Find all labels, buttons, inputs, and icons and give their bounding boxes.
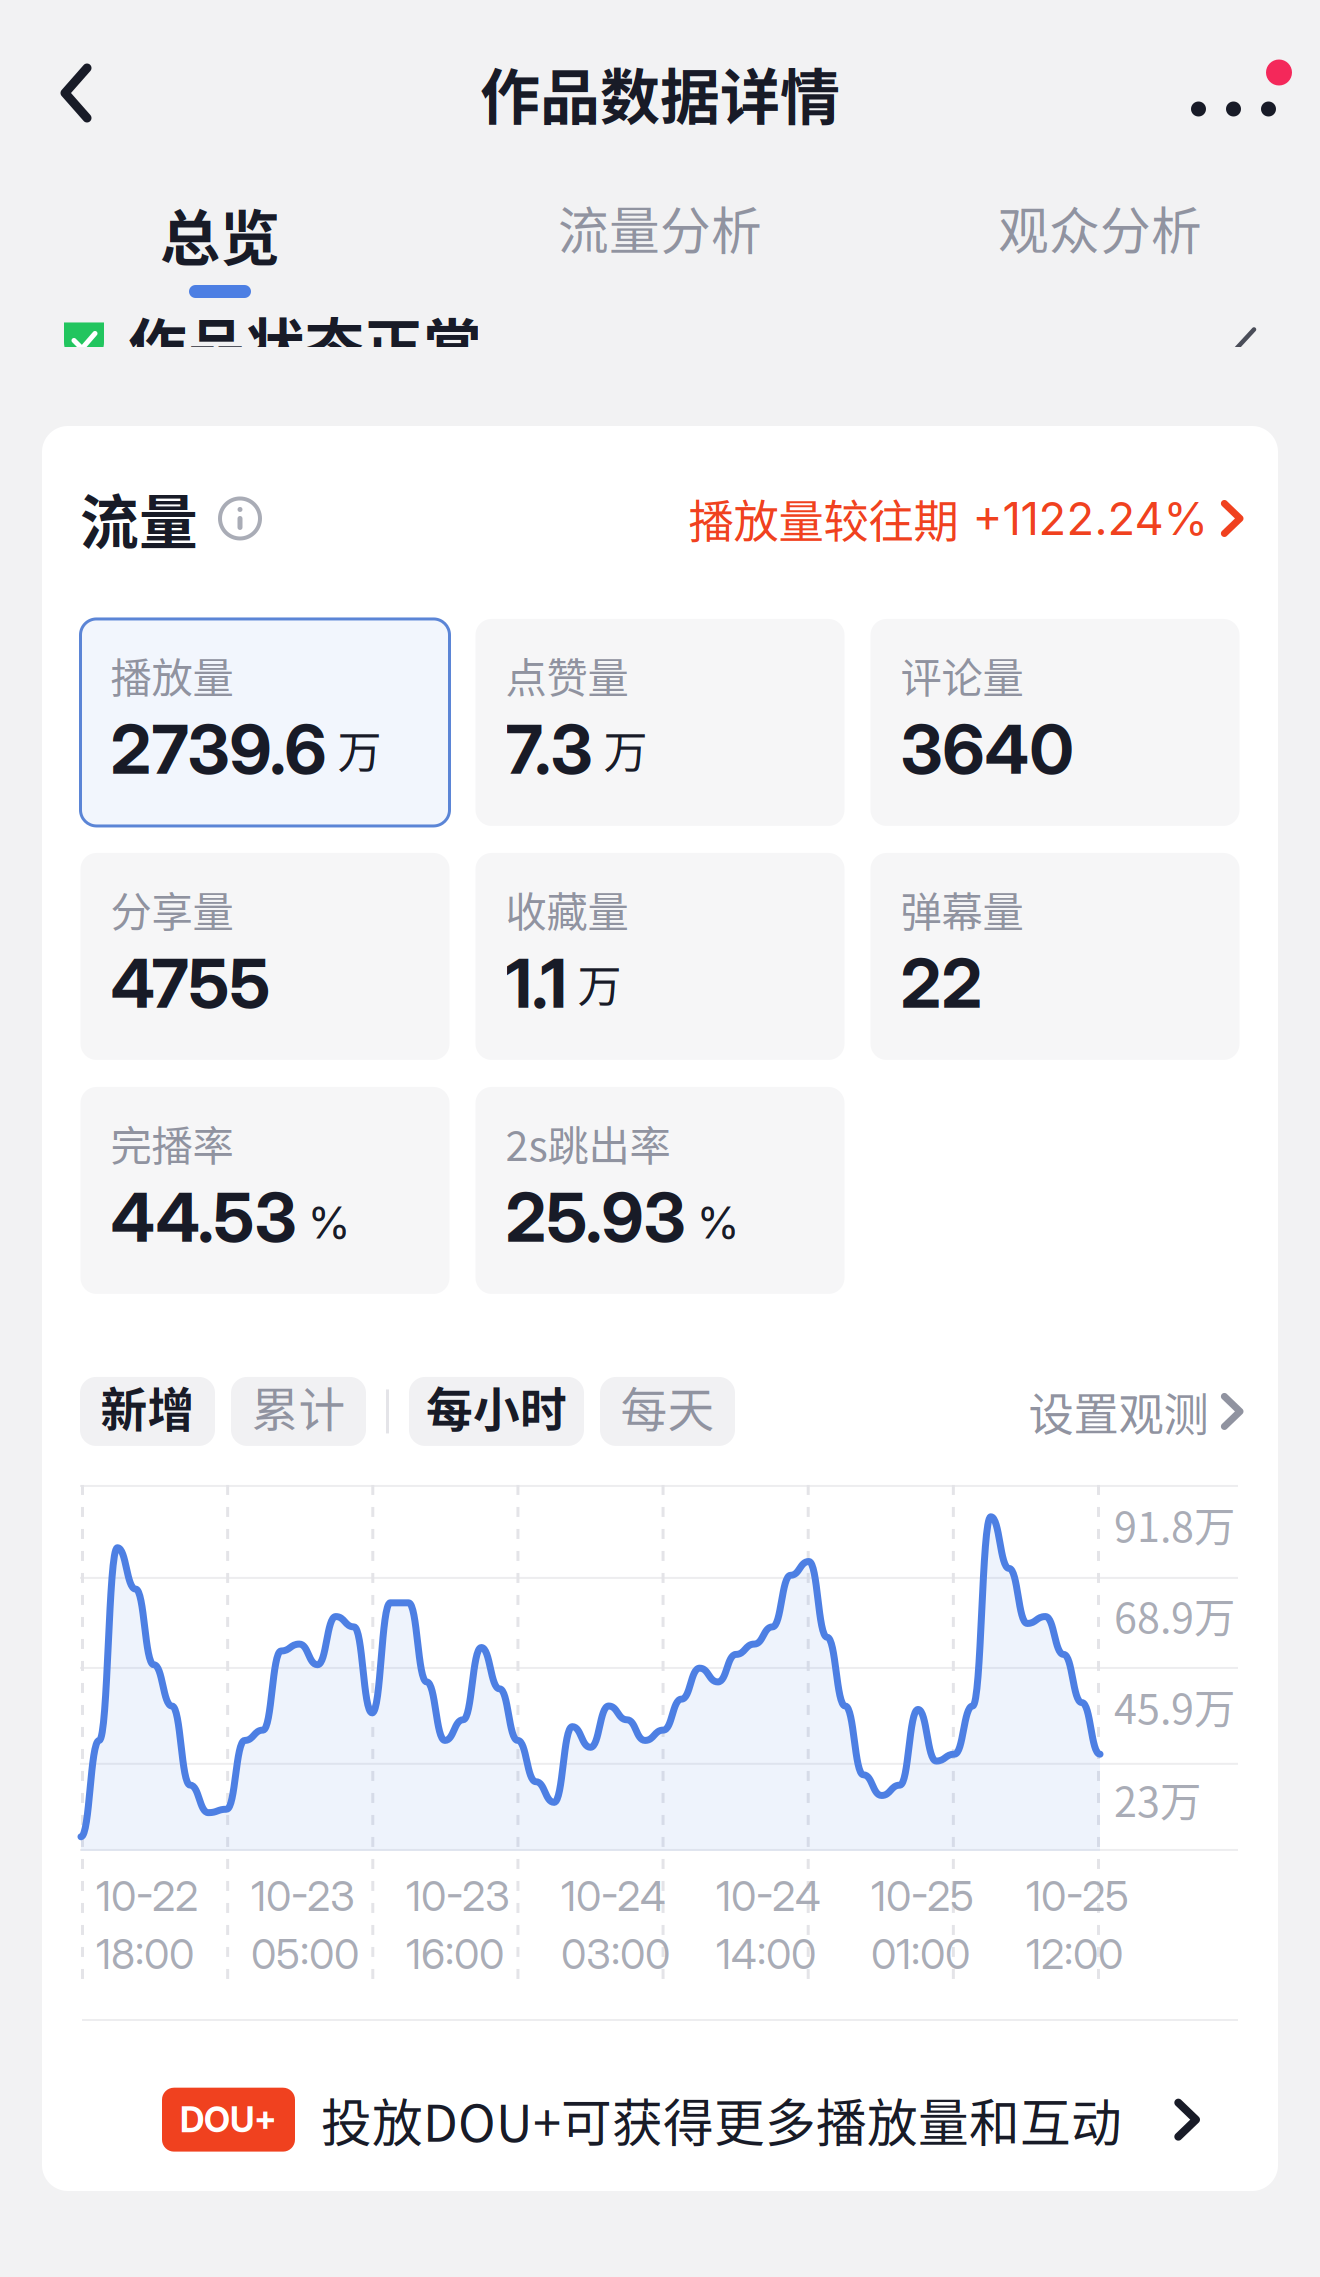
button[interactable]: 播放量较往期: [688, 486, 1244, 551]
button[interactable]: 总览: [0, 186, 440, 310]
button[interactable]: 完播率: [80, 1087, 449, 1294]
button[interactable]: 新增: [80, 1377, 215, 1446]
staticText: 播放量较往期: [688, 486, 958, 551]
staticText: 流量: [80, 476, 198, 561]
staticText: 万: [603, 717, 647, 781]
staticText: 总览: [160, 191, 280, 278]
staticText: 10-23: [406, 1871, 510, 1921]
button[interactable]: 点赞量: [475, 619, 844, 826]
staticText: 作品状态正常: [128, 300, 482, 385]
button[interactable]: DOU+: [42, 2083, 1278, 2156]
staticText: 45.9万: [1114, 1676, 1235, 1736]
staticText: 01:00: [871, 1929, 970, 1979]
staticText: 新增: [100, 1373, 194, 1440]
button[interactable]: 分享量: [80, 853, 449, 1060]
button[interactable]: 收藏量: [475, 853, 844, 1060]
staticText: 10-22: [96, 1871, 198, 1921]
staticText: 14:00: [716, 1929, 816, 1979]
staticText: 16:00: [406, 1929, 504, 1979]
staticText: 18:00: [96, 1929, 194, 1979]
staticText: 25.93: [505, 1176, 685, 1258]
staticText: 7.3: [505, 708, 592, 790]
button[interactable]: 作品状态正常: [0, 310, 1320, 347]
staticText: 分享量: [110, 879, 233, 939]
button[interactable]: 2s跳出率: [475, 1087, 844, 1294]
staticText: 91.8万: [1114, 1494, 1235, 1554]
staticText: 44.53: [110, 1176, 296, 1258]
staticText: 作品数据详情: [480, 50, 840, 136]
staticText: %: [307, 1196, 350, 1249]
staticText: 观众分析: [998, 191, 1202, 264]
staticText: 每小时: [426, 1373, 567, 1440]
staticText: 2739.6: [110, 708, 326, 790]
button[interactable]: 每天: [600, 1377, 735, 1446]
staticText: 投放DOU+可获得更多播放量和互动: [321, 2083, 1122, 2156]
button[interactable]: 观众分析: [880, 186, 1320, 310]
staticText: DOU+: [180, 2099, 277, 2141]
staticText: 完播率: [110, 1113, 233, 1173]
staticText: 收藏量: [505, 879, 628, 939]
staticText: 点赞量: [505, 645, 628, 705]
button[interactable]: Back: [0, 42, 118, 144]
staticText: 万: [577, 951, 621, 1015]
staticText: 05:00: [251, 1929, 359, 1979]
staticText: 累计: [251, 1373, 345, 1440]
button[interactable]: 流量分析: [440, 186, 880, 310]
staticText: 10-23: [251, 1871, 355, 1921]
button[interactable]: 设置观测: [1028, 1379, 1244, 1444]
staticText: 10-24: [716, 1871, 821, 1921]
button[interactable]: 播放量: [80, 619, 449, 826]
staticText: 弹幕量: [900, 879, 1023, 939]
staticText: 1.1: [505, 942, 566, 1024]
staticText: 10-25: [871, 1871, 974, 1921]
button[interactable]: 每小时: [409, 1377, 584, 1446]
staticText: 22: [900, 942, 982, 1024]
staticText: +1122.24%: [972, 491, 1208, 546]
staticText: 10-24: [561, 1871, 666, 1921]
staticText: 每天: [620, 1373, 714, 1440]
staticText: 评论量: [900, 645, 1023, 705]
button[interactable]: More options: [1173, 57, 1320, 128]
staticText: 10-25: [1026, 1871, 1129, 1921]
staticText: 4755: [110, 942, 270, 1024]
staticText: %: [696, 1196, 739, 1249]
staticText: 设置观测: [1028, 1379, 1208, 1444]
staticText: 68.9万: [1114, 1585, 1235, 1645]
staticText: 2s跳出率: [505, 1113, 670, 1173]
button[interactable]: 弹幕量: [870, 853, 1239, 1060]
staticText: 03:00: [561, 1929, 670, 1979]
button[interactable]: 评论量: [870, 619, 1239, 826]
staticText: 播放量: [110, 645, 233, 705]
staticText: 12:00: [1026, 1929, 1123, 1979]
staticText: 万: [337, 717, 381, 781]
staticText: 23万: [1114, 1769, 1201, 1829]
button[interactable]: 累计: [231, 1377, 366, 1446]
staticText: 流量分析: [558, 191, 762, 264]
staticText: 3640: [900, 708, 1073, 790]
